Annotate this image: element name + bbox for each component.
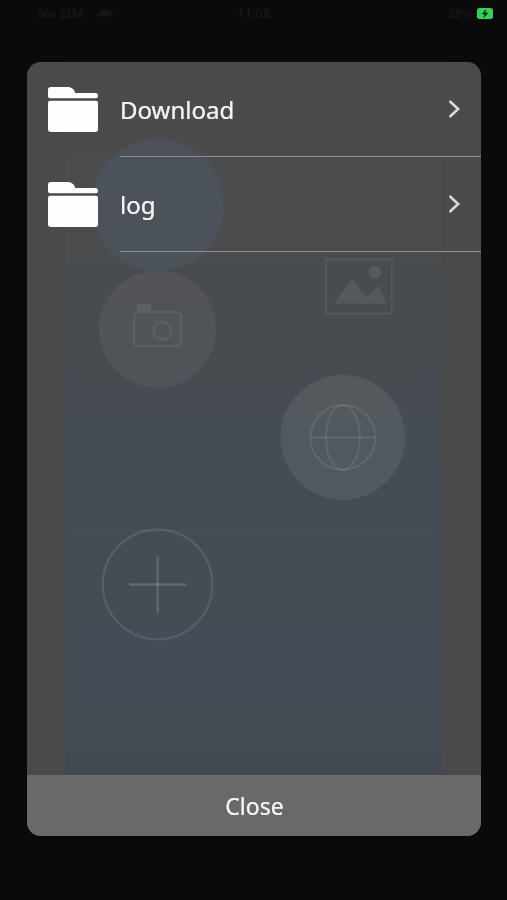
staticText: 11:08 xyxy=(237,4,271,22)
staticText: Download xyxy=(120,93,441,126)
staticText: No SIM xyxy=(38,4,84,22)
staticText: log xyxy=(120,188,441,221)
staticText: 28% xyxy=(448,5,473,21)
button[interactable]: Close xyxy=(27,775,481,836)
button[interactable]: Download xyxy=(27,62,481,156)
other: Open Download xyxy=(441,96,467,122)
button[interactable]: log xyxy=(27,157,481,251)
staticText: Close xyxy=(225,790,284,821)
other: Open log xyxy=(441,191,467,217)
